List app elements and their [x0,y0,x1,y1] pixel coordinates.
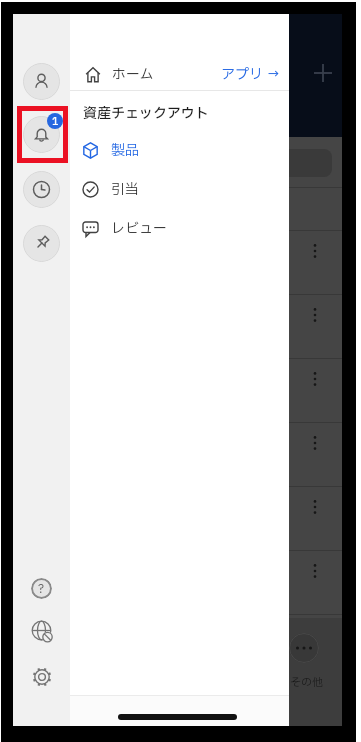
button[interactable]: ホーム [70,58,289,91]
staticText: ホーム [112,64,154,85]
staticText: アプリ → [221,64,281,85]
button[interactable] [23,171,60,208]
staticText: 引当 [111,179,139,200]
staticText: 1 [52,114,59,129]
button[interactable]: 製品 [70,134,289,167]
button[interactable] [23,116,60,153]
button[interactable] [23,225,60,262]
staticText: その他 [290,674,323,690]
button[interactable] [30,620,53,643]
staticText: レビュー [111,218,167,239]
button[interactable] [23,63,60,100]
button[interactable]: レビュー [70,212,289,245]
staticText: ? [38,580,45,598]
button[interactable]: 引当 [70,173,289,206]
button[interactable]: アプリ → [211,58,281,91]
button[interactable]: ? [31,578,52,599]
staticText: 資産チェックアウト [83,103,209,121]
staticText: 製品 [111,140,139,161]
button[interactable] [31,666,53,688]
